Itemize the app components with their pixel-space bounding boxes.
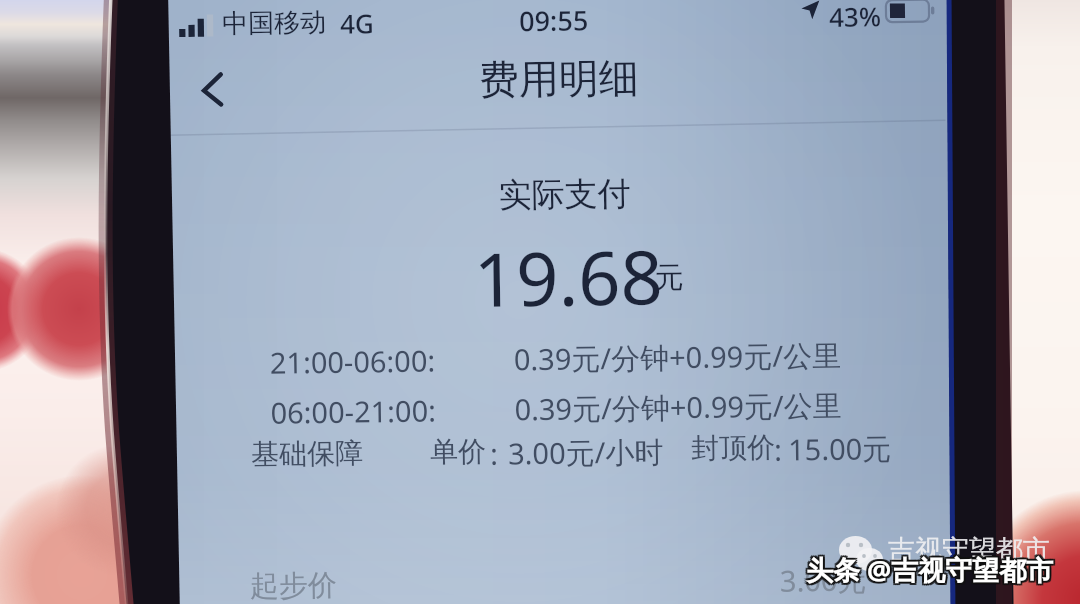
staticText: 头条 @吉视守望都市 — [806, 553, 1054, 590]
staticText: 21:00-06:00: — [269, 340, 436, 382]
staticText: 0.39元/分钟+0.99元/公里 — [514, 385, 843, 429]
staticText: 封顶价 — [691, 430, 775, 466]
staticText: : — [774, 430, 782, 469]
staticText: 4G — [340, 5, 374, 41]
staticText: 起步价 — [250, 567, 337, 604]
staticText: 单价 — [430, 434, 486, 470]
staticText: 头条 @吉视守望都市 — [804, 551, 1052, 588]
staticText: 头条 @吉视守望都市 — [804, 553, 1052, 590]
staticText: 头条 @吉视守望都市 — [808, 551, 1056, 588]
staticText: 基础保障 — [251, 435, 363, 472]
staticText: 头条 @吉视守望都市 — [806, 551, 1054, 588]
staticText: 头条 @吉视守望都市 — [808, 553, 1056, 590]
staticText: 09:55 — [519, 1, 589, 39]
staticText: 头条 @吉视守望都市 — [808, 549, 1056, 586]
staticText: 19.68 — [473, 225, 664, 329]
staticText: 3.00元 — [780, 559, 867, 601]
staticText: 15.00元 — [788, 428, 892, 469]
staticText: 43% — [829, 0, 881, 34]
staticText: 0.39元/分钟+0.99元/公里 — [513, 335, 842, 379]
staticText: 3.00元/小时 — [508, 431, 664, 473]
staticText: 元 — [654, 259, 684, 296]
staticText: 费用明细 — [478, 53, 639, 105]
staticText: 头条 @吉视守望都市 — [806, 549, 1054, 586]
staticText: 06:00-21:00: — [270, 390, 437, 432]
button[interactable]: Back — [182, 56, 253, 123]
staticText: 头条 @吉视守望都市 — [804, 549, 1052, 586]
staticText: 吉视守望都市 — [888, 533, 1050, 567]
staticText: 中国移动 — [222, 6, 326, 40]
staticText: : — [490, 434, 498, 473]
staticText: 实际支付 — [498, 173, 631, 216]
